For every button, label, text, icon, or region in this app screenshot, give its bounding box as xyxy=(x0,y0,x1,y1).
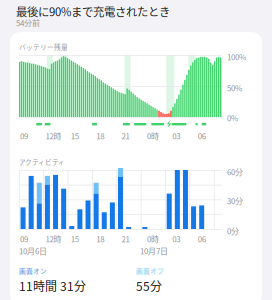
staticText: 18 xyxy=(96,233,104,245)
staticText: 06 xyxy=(198,130,206,142)
staticText: 03 xyxy=(172,233,180,245)
staticText: 60分 xyxy=(227,166,243,178)
staticText: 09 xyxy=(20,130,28,142)
staticText: 最後に90%まで充電されたとき xyxy=(16,3,170,19)
staticText: 30分 xyxy=(227,195,243,207)
staticText: 11時間 31分 xyxy=(19,277,86,294)
staticText: 10月6日 xyxy=(19,245,47,257)
staticText: 12時 xyxy=(45,130,61,142)
staticText: 18 xyxy=(96,130,104,142)
staticText: 21 xyxy=(121,233,129,245)
staticText: 09 xyxy=(20,233,28,245)
staticText: 06 xyxy=(198,233,206,245)
staticText: 100% xyxy=(227,51,246,63)
staticText: 0分 xyxy=(227,225,239,237)
staticText: 0時 xyxy=(147,130,159,142)
staticText: 50% xyxy=(227,82,242,94)
staticText: 15 xyxy=(71,233,79,245)
staticText: バッテリー残量 xyxy=(19,42,68,52)
staticText: 55分 xyxy=(136,277,162,294)
staticText: 12時 xyxy=(45,233,61,245)
staticText: 画面オン xyxy=(19,266,47,276)
staticText: 0% xyxy=(227,112,238,124)
staticText: 0時 xyxy=(147,233,159,245)
staticText: 15 xyxy=(71,130,79,142)
staticText: 21 xyxy=(121,130,129,142)
staticText: アクティビティ xyxy=(19,157,65,167)
staticText: 03 xyxy=(172,130,180,142)
staticText: 54分前 xyxy=(16,17,40,29)
staticText: 画面オフ xyxy=(136,266,164,276)
staticText: 10月7日 xyxy=(140,245,168,257)
